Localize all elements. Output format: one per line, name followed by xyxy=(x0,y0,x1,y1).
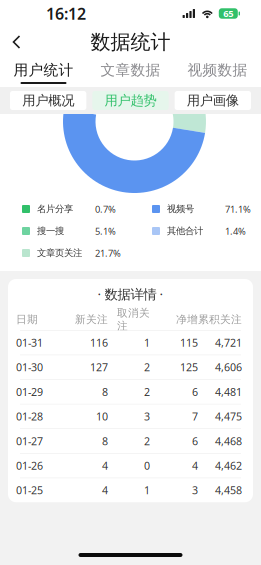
staticText: 8 xyxy=(102,385,108,399)
staticText: 1 xyxy=(144,483,150,497)
staticText: 4 xyxy=(102,458,108,473)
button[interactable]: 用户统计 xyxy=(0,57,87,87)
staticText: 用户画像 xyxy=(187,92,239,109)
staticText: 65 xyxy=(223,7,233,20)
staticText: 搜一搜 xyxy=(37,225,64,237)
staticText: 净增 xyxy=(176,313,198,326)
staticText: 01-29 xyxy=(16,385,43,399)
staticText: 视频号 xyxy=(167,203,194,215)
staticText: 8 xyxy=(102,434,108,448)
staticText: 日期 xyxy=(16,313,38,326)
staticText: 4,458 xyxy=(215,483,242,497)
staticText: 数据统计 xyxy=(90,30,170,54)
button[interactable]: 用户画像 xyxy=(175,91,251,110)
staticText: 21.7% xyxy=(95,247,121,259)
staticText: 6 xyxy=(192,385,198,399)
staticText: 4,475 xyxy=(215,409,242,423)
staticText: 16:12 xyxy=(46,3,86,24)
staticText: 新关注 xyxy=(75,313,108,326)
staticText: 01-28 xyxy=(16,409,43,423)
button[interactable]: Back xyxy=(0,27,46,57)
staticText: 用户统计 xyxy=(13,61,73,79)
staticText: 4,721 xyxy=(215,335,242,350)
button[interactable]: 文章数据 xyxy=(87,57,174,87)
staticText: 01-26 xyxy=(16,458,43,473)
staticText: 4,468 xyxy=(215,434,242,448)
button[interactable]: 用户概况 xyxy=(10,91,86,110)
staticText: 125 xyxy=(180,360,198,374)
staticText: 3 xyxy=(192,483,198,497)
staticText: 6 xyxy=(192,434,198,448)
staticText: 4,606 xyxy=(215,360,242,374)
staticText: 0.7% xyxy=(95,203,116,215)
staticText: 7 xyxy=(192,409,198,423)
staticText: 4 xyxy=(102,483,108,497)
staticText: 115 xyxy=(180,335,198,350)
staticText: 01-27 xyxy=(16,434,43,448)
staticText: 3 xyxy=(144,409,150,423)
staticText: 01-30 xyxy=(16,360,43,374)
staticText: 0 xyxy=(144,458,150,473)
staticText: · 数据详情 · xyxy=(97,285,163,303)
staticText: 其他合计 xyxy=(167,225,203,237)
button[interactable]: 视频数据 xyxy=(174,57,261,87)
staticText: 5.1% xyxy=(95,225,116,237)
staticText: 1.4% xyxy=(225,225,246,237)
staticText: 10 xyxy=(96,409,108,423)
staticText: 累积关注 xyxy=(198,313,242,326)
staticText: 4 xyxy=(192,458,198,473)
staticText: 116 xyxy=(90,335,108,350)
staticText: 文章页关注 xyxy=(37,247,82,259)
staticText: 名片分享 xyxy=(37,203,73,215)
staticText: 127 xyxy=(90,360,108,374)
staticText: 用户趋势 xyxy=(104,92,156,109)
button[interactable]: 用户趋势 xyxy=(92,91,169,110)
staticText: 01-25 xyxy=(16,483,43,497)
staticText: 4,462 xyxy=(215,458,242,473)
staticText: 2 xyxy=(144,385,150,399)
staticText: 4,481 xyxy=(215,385,242,399)
staticText: 01-31 xyxy=(16,335,43,350)
staticText: 取消关注 xyxy=(117,306,150,333)
staticText: 2 xyxy=(144,434,150,448)
staticText: 视频数据 xyxy=(187,61,247,79)
staticText: 1 xyxy=(144,335,150,350)
staticText: 用户概况 xyxy=(22,92,74,109)
staticText: 71.1% xyxy=(225,203,251,215)
staticText: 文章数据 xyxy=(100,61,160,79)
staticText: 2 xyxy=(144,360,150,374)
